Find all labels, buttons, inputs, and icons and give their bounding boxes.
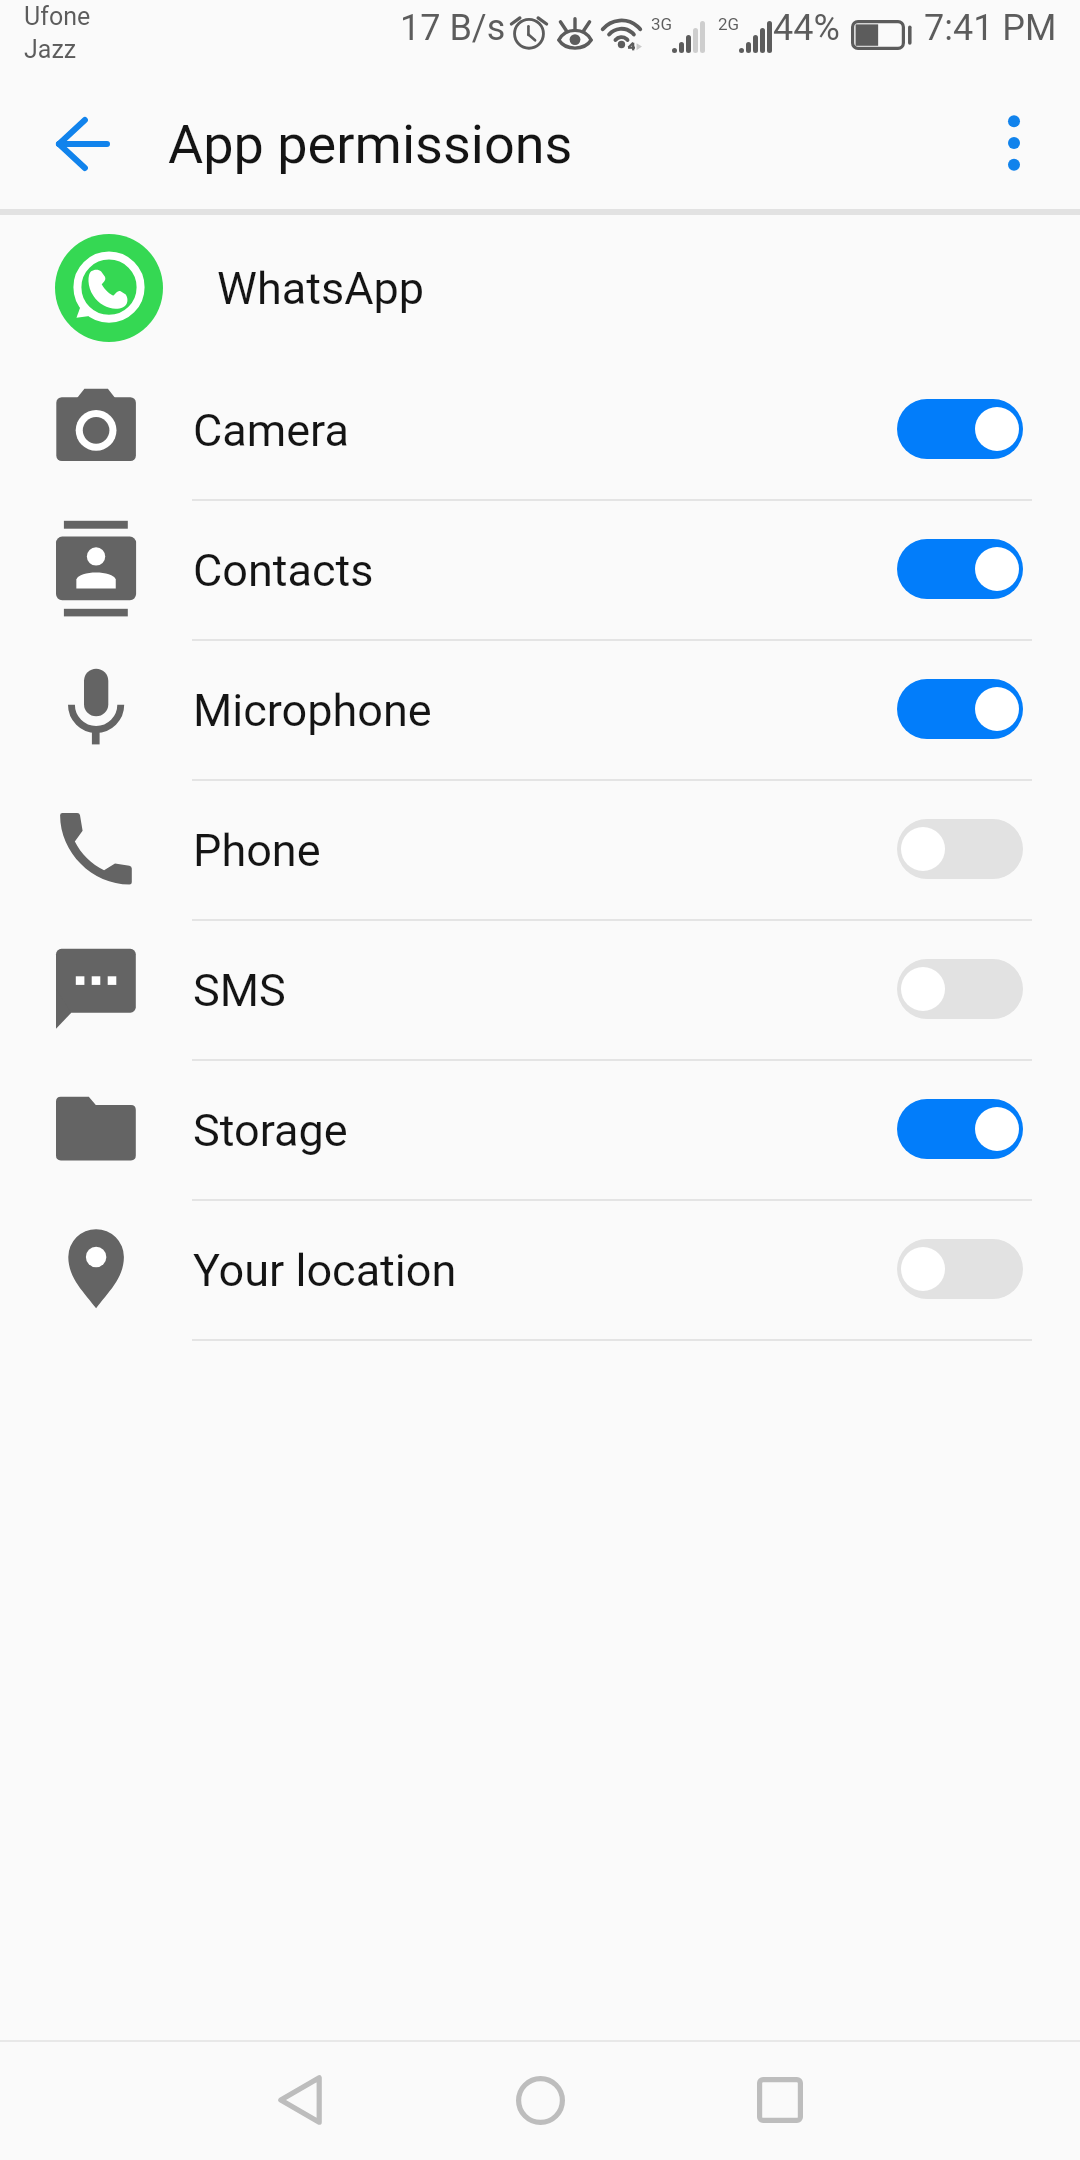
staticText: SMS xyxy=(193,964,286,1017)
staticText: Ufone xyxy=(24,2,91,31)
staticText: WhatsApp xyxy=(217,262,425,315)
button[interactable]: Camera xyxy=(0,359,1080,499)
button[interactable] xyxy=(897,1099,1023,1159)
button[interactable]: WhatsApp xyxy=(0,212,1080,359)
staticText: Your location xyxy=(193,1244,457,1297)
button[interactable]: Your location xyxy=(0,1199,1080,1339)
staticText: 17 B/s xyxy=(400,7,506,49)
staticText: Phone xyxy=(193,824,321,877)
button[interactable] xyxy=(897,959,1023,1019)
button[interactable]: Phone xyxy=(0,779,1080,919)
button[interactable]: Microphone xyxy=(0,639,1080,779)
button[interactable]: Home xyxy=(480,2040,600,2160)
staticText: 44% xyxy=(773,7,840,49)
staticText: Jazz xyxy=(24,35,77,64)
button[interactable] xyxy=(897,679,1023,739)
staticText: Storage xyxy=(193,1104,348,1157)
button[interactable] xyxy=(897,539,1023,599)
staticText: Contacts xyxy=(193,544,374,597)
button[interactable]: Navigate up xyxy=(28,89,138,199)
button[interactable] xyxy=(897,1239,1023,1299)
button[interactable]: Contacts xyxy=(0,499,1080,639)
staticText: 7:41 PM xyxy=(924,7,1057,49)
staticText: Camera xyxy=(193,404,349,457)
button[interactable]: SMS xyxy=(0,919,1080,1059)
staticText: 3G xyxy=(651,14,673,34)
button[interactable]: Storage xyxy=(0,1059,1080,1199)
staticText: App permissions xyxy=(168,113,573,176)
button[interactable]: More options xyxy=(960,88,1070,198)
staticText: 2G xyxy=(718,14,740,34)
button[interactable]: Back xyxy=(240,2040,360,2160)
button[interactable] xyxy=(897,819,1023,879)
staticText: Microphone xyxy=(193,684,432,737)
button[interactable]: Recents xyxy=(720,2040,840,2160)
button[interactable] xyxy=(897,399,1023,459)
